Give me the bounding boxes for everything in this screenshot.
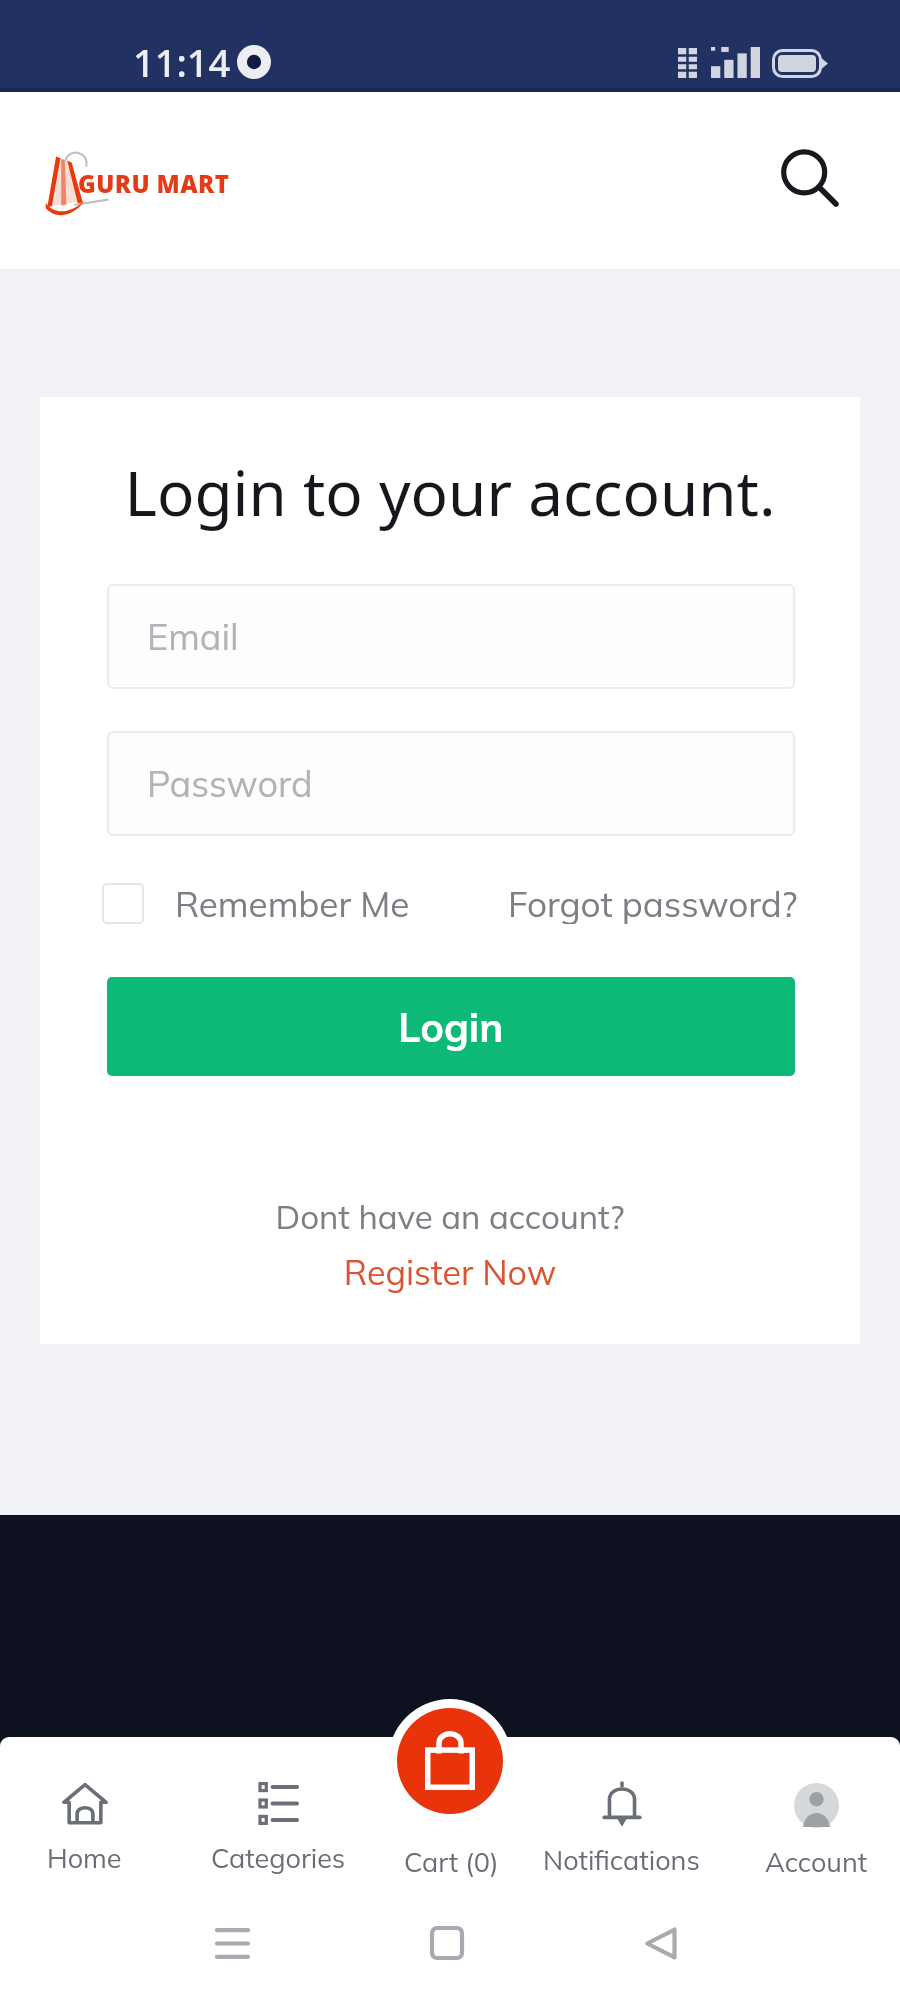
staticText: GURU MART [78,167,230,200]
button[interactable]: Search [774,143,850,219]
button[interactable]: Forgot password? [508,882,798,924]
button[interactable]: Home [412,1908,482,1978]
button[interactable]: Cart (0) [404,1783,499,1879]
button[interactable]: Back [626,1908,696,1978]
button[interactable]: Login [107,977,795,1076]
button[interactable]: Notifications [543,1783,700,1877]
staticText: Cart (0) [404,1845,499,1879]
staticText: Dont have an account? [40,1196,860,1237]
button[interactable]: Password [107,731,795,836]
button[interactable]: Remember Me [102,882,410,924]
staticText: Email [147,614,239,659]
button[interactable]: Email [107,584,795,689]
button[interactable]: Cart [388,1699,512,1823]
staticText: Notifications [543,1843,700,1877]
staticText: 11:14 [133,36,231,88]
staticText: Password [147,761,313,806]
staticText: Home [47,1841,122,1875]
button[interactable]: Home [47,1783,122,1875]
button[interactable]: Account [765,1783,868,1879]
button[interactable]: Register Now [40,1251,860,1294]
staticText: Account [765,1845,868,1879]
button[interactable]: Categories [211,1783,346,1875]
staticText: Login to your account. [40,450,860,534]
staticText: Categories [211,1841,346,1875]
button[interactable]: Recent apps [197,1908,267,1978]
staticText: Remember Me [175,882,410,924]
staticText: Login [398,1002,504,1052]
